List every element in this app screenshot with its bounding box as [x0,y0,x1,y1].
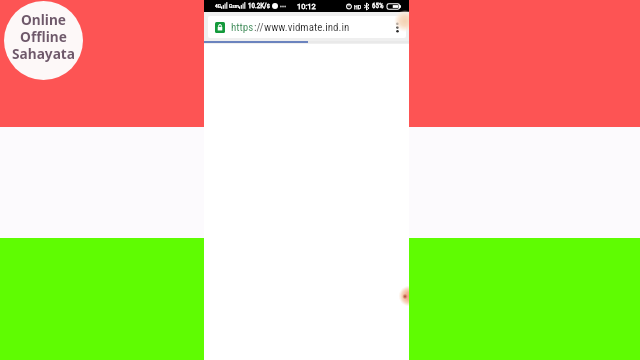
staticText: https [231,21,254,34]
staticText: Online Offline Sahayata [12,10,75,63]
staticText: 65% [372,2,384,10]
staticText: HD [354,3,362,10]
staticText: www.vidmate.ind.in [264,21,350,34]
staticText: 10.2K/s [248,2,270,10]
button[interactable]: Online Offline Sahayata [4,1,83,80]
button[interactable]: https [208,16,406,38]
staticText: 4G [215,3,221,9]
staticText: Gsm [229,3,239,9]
staticText: 10:12 [297,2,316,11]
staticText: :// [254,21,264,34]
button[interactable]: More options [392,19,402,35]
